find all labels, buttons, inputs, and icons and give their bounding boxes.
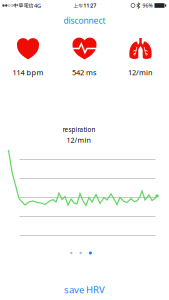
staticText: 12/min — [66, 135, 90, 145]
staticText: 542 ms — [72, 67, 97, 77]
staticText: save HRV — [64, 283, 105, 296]
staticText: respiration — [62, 125, 95, 134]
staticText: 4G — [34, 2, 41, 9]
staticText: 上午11:27 — [73, 2, 96, 9]
staticText: 114 bpm — [12, 67, 43, 77]
button[interactable]: Page 3 of 3 — [63, 248, 99, 258]
staticText: 中華電信 — [13, 2, 33, 9]
button[interactable]: disconnect — [54, 14, 114, 26]
staticText: 12/min — [128, 67, 153, 77]
button[interactable]: save HRV — [54, 283, 114, 295]
staticText: 96% — [142, 2, 152, 9]
staticText: disconnect — [63, 15, 105, 26]
